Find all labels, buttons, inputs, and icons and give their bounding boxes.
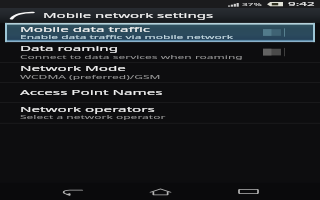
button[interactable]: Mobile data traffic: [0, 23, 320, 42]
staticText: WCDMA (preferred)/GSM: [20, 73, 161, 80]
button[interactable]: Back: [31, 183, 112, 200]
staticText: 37%: [242, 1, 262, 7]
button[interactable]: Access Point Names: [0, 82, 320, 102]
staticText: Data roaming: [20, 45, 119, 53]
button[interactable]: Home: [120, 183, 200, 200]
staticText: Mobile data traffic: [20, 25, 151, 34]
staticText: Connect to data services when roaming: [20, 53, 243, 60]
staticText: Mobile network settings: [43, 11, 214, 20]
button[interactable]: Network Mode: [0, 62, 320, 82]
staticText: Network operators: [20, 105, 155, 114]
staticText: Access Point Names: [20, 88, 163, 97]
button[interactable]: Navigate up: [0, 8, 43, 23]
button[interactable]: Recent apps: [208, 183, 288, 200]
button[interactable]: Network operators: [0, 102, 320, 123]
staticText: 9:42: [288, 0, 315, 8]
staticText: Enable data traffic via mobile network: [20, 34, 234, 40]
staticText: Select a network operator: [20, 114, 166, 120]
staticText: Network Mode: [20, 65, 126, 73]
button[interactable]: Data roaming: [0, 42, 320, 62]
